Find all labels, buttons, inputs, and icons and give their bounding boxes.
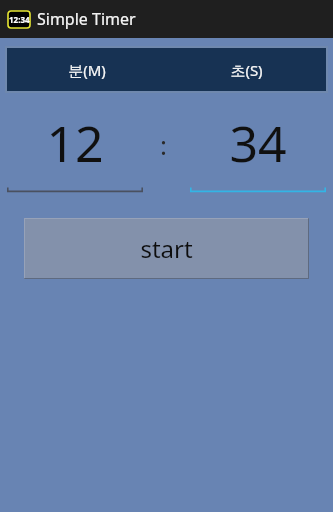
button[interactable]: 12 xyxy=(7,105,143,193)
staticText: 12 xyxy=(46,109,104,177)
other: App icon xyxy=(8,11,30,28)
staticText: Simple Timer xyxy=(37,8,136,30)
staticText: 초(S) xyxy=(230,60,263,80)
button[interactable]: 초(S) xyxy=(166,48,326,91)
staticText: 34 xyxy=(229,109,287,177)
staticText: 12:34 xyxy=(9,14,30,25)
staticText: : xyxy=(160,127,167,162)
button[interactable]: 34 xyxy=(190,105,326,193)
button[interactable]: start xyxy=(24,218,309,279)
staticText: 분(M) xyxy=(68,60,106,80)
button[interactable]: 분(M) xyxy=(7,48,166,91)
staticText: start xyxy=(140,232,193,265)
